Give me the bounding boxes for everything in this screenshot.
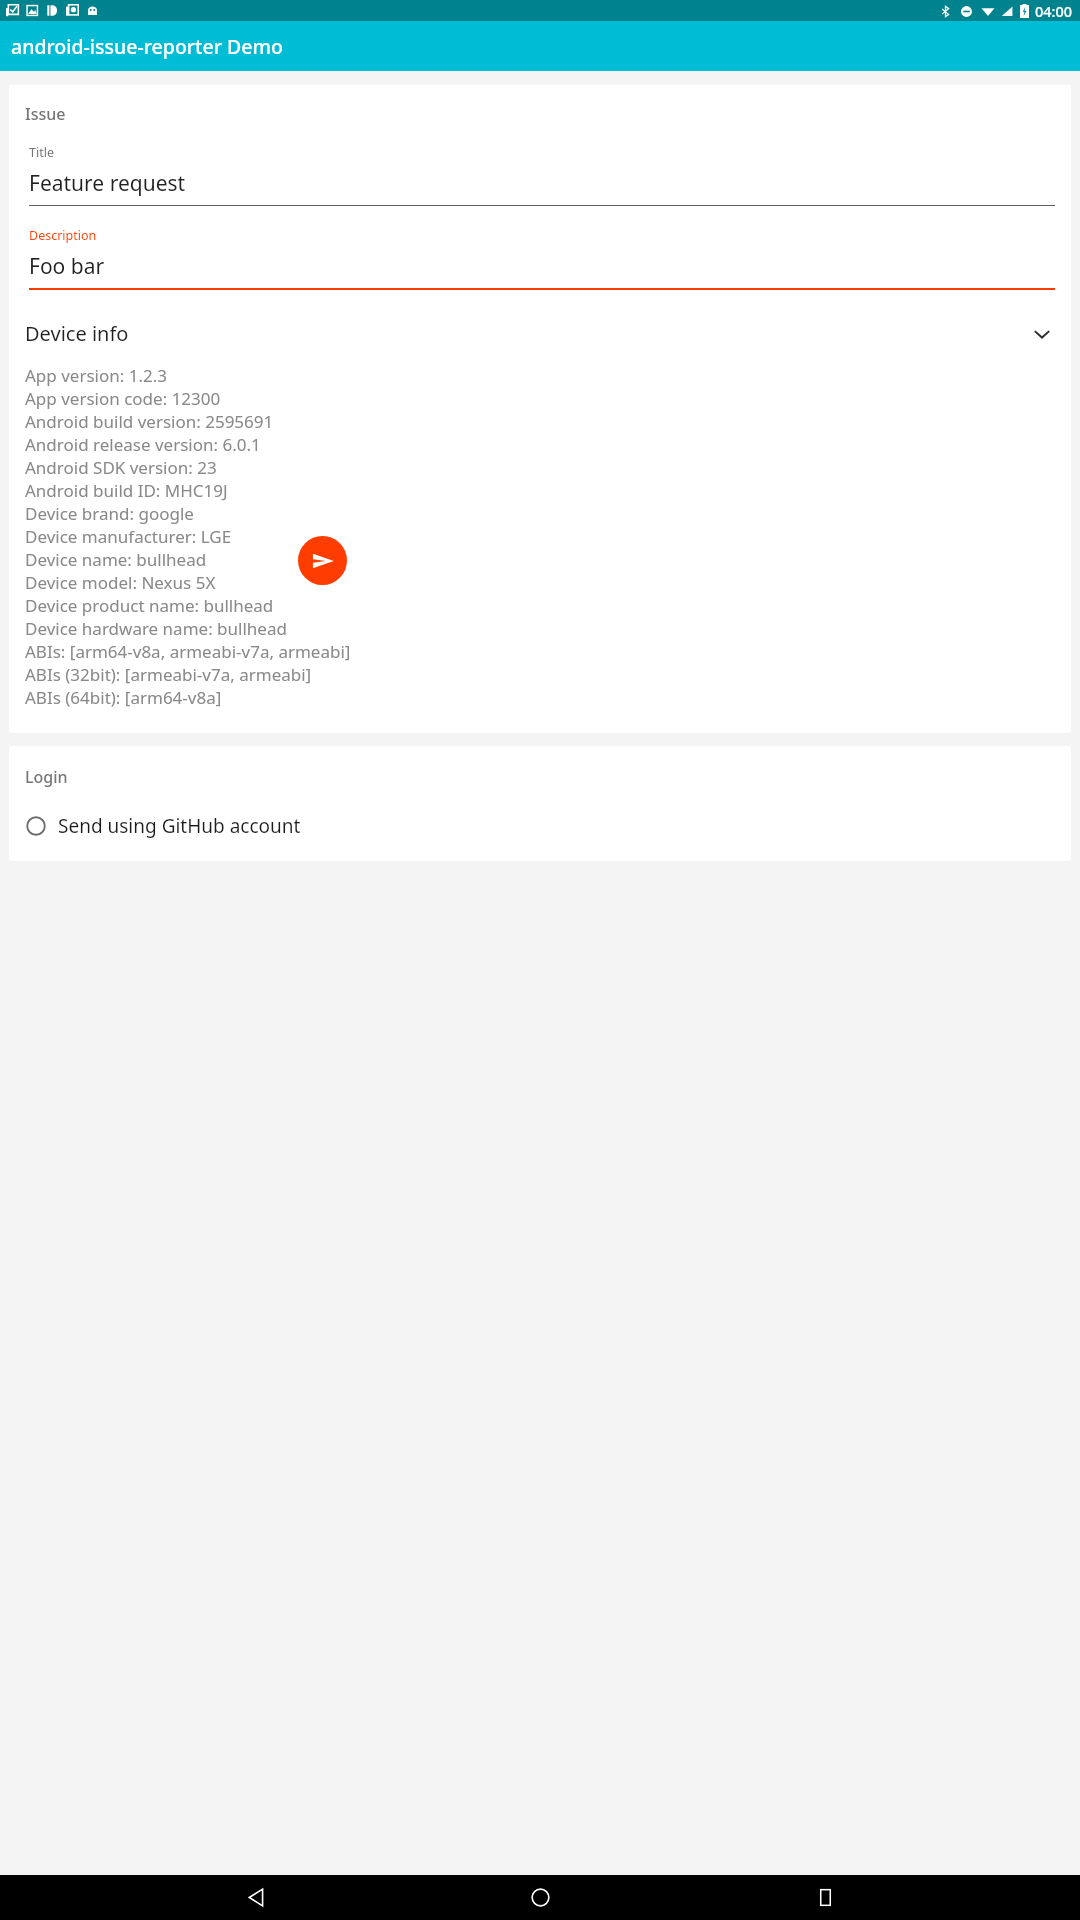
staticText: android-issue-reporter Demo [11,33,283,60]
staticText: Login [25,766,68,788]
staticText: Device model: Nexus 5X [25,571,216,594]
staticText: 04:00 [1035,1,1073,21]
staticText: Device name: bullhead [25,548,207,571]
button[interactable]: Back [227,1875,285,1920]
staticText: Device info [25,320,1029,347]
button[interactable]: Send using GitHub account [25,813,1055,839]
staticText: Description [29,227,97,244]
staticText: Android SDK version: 23 [25,456,217,479]
staticText: Device manufacturer: LGE [25,525,232,548]
staticText: Android build version: 2595691 [25,410,274,433]
button[interactable]: Title [29,144,1055,206]
staticText: ABIs (32bit): [armeabi-v7a, armeabi] [25,663,312,686]
button[interactable]: Description [29,227,1055,290]
staticText: Send using GitHub account [58,813,301,839]
staticText: Issue [25,103,66,125]
staticText: Device product name: bullhead [25,594,274,617]
staticText: Device hardware name: bullhead [25,617,287,640]
button[interactable]: Recent apps [796,1875,854,1920]
button[interactable]: Device info [25,320,1055,347]
button[interactable]: Send report [298,536,347,585]
staticText: Device brand: google [25,502,194,525]
other: Collapse device info [1029,321,1055,347]
staticText: App version code: 12300 [25,387,221,410]
staticText: ABIs (64bit): [arm64-v8a] [25,686,222,709]
staticText: Foo bar [29,252,105,281]
staticText: Android build ID: MHC19J [25,479,228,502]
staticText: Title [29,144,54,161]
button[interactable]: Home [511,1875,569,1920]
staticText: ABIs: [arm64-v8a, armeabi-v7a, armeabi] [25,640,351,663]
staticText: App version: 1.2.3 [25,364,168,387]
staticText: Android release version: 6.0.1 [25,433,261,456]
staticText: Feature request [29,169,186,198]
